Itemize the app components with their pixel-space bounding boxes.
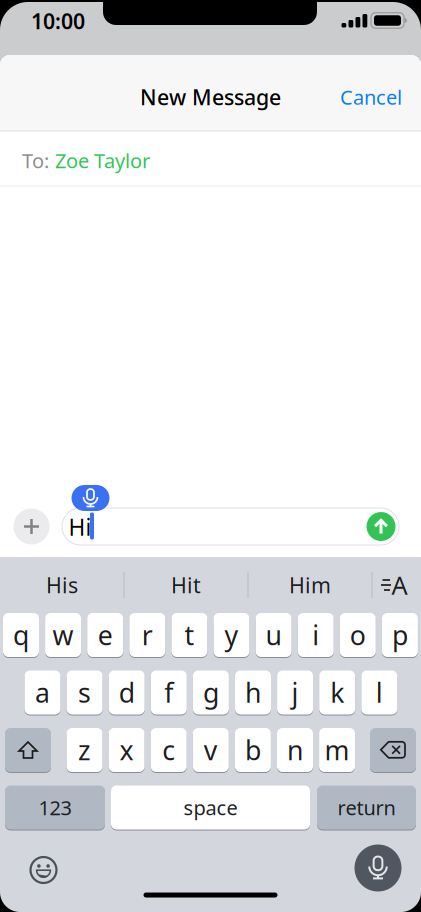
button[interactable]: d <box>109 670 145 714</box>
button[interactable]: a <box>24 670 60 714</box>
staticText: o <box>350 617 366 653</box>
staticText: d <box>119 675 135 710</box>
button[interactable]: w <box>45 613 81 657</box>
button[interactable]: p <box>382 613 418 657</box>
staticText: h <box>245 675 261 710</box>
button[interactable]: s <box>67 670 103 714</box>
staticText: z <box>78 732 91 768</box>
staticText: c <box>162 732 175 768</box>
button[interactable]: y <box>213 613 249 657</box>
staticText: j <box>292 675 299 710</box>
button[interactable]: j <box>277 670 313 714</box>
button[interactable]: Message <box>62 508 399 545</box>
staticText: i <box>312 617 319 653</box>
button[interactable]: k <box>319 670 355 714</box>
staticText: q <box>13 617 29 653</box>
staticText: v <box>204 732 218 768</box>
button[interactable]: r <box>129 613 165 657</box>
staticText: Hit <box>171 571 201 599</box>
staticText: A <box>391 568 407 602</box>
button[interactable]: Delete <box>370 728 416 772</box>
button[interactable]: t <box>171 613 207 657</box>
button[interactable]: h <box>235 670 271 714</box>
staticText: Hi <box>68 512 91 542</box>
staticText: y <box>224 617 238 653</box>
staticText: Cancel <box>340 84 402 110</box>
staticText: New Message <box>140 83 281 111</box>
button[interactable]: v <box>193 728 229 772</box>
staticText: t <box>184 617 194 653</box>
button[interactable]: f <box>151 670 187 714</box>
button[interactable]: Dictate <box>71 485 109 511</box>
button[interactable]: o <box>340 613 376 657</box>
staticText: x <box>120 732 134 768</box>
staticText: return <box>337 794 395 821</box>
button[interactable]: m <box>319 728 355 772</box>
button[interactable]: Him <box>255 563 365 607</box>
button[interactable]: 123 <box>5 785 105 829</box>
staticText: f <box>164 675 173 710</box>
button[interactable]: b <box>235 728 271 772</box>
button[interactable]: c <box>151 728 187 772</box>
button[interactable]: space <box>111 785 310 829</box>
button[interactable]: q <box>3 613 39 657</box>
staticText: 123 <box>38 794 71 821</box>
staticText: m <box>325 732 350 768</box>
button[interactable]: Emoji <box>28 855 58 885</box>
staticText: r <box>142 617 153 653</box>
button[interactable]: Autofill <box>380 573 408 597</box>
button[interactable]: x <box>109 728 145 772</box>
staticText: Zoe Taylor <box>55 147 150 174</box>
button[interactable]: Cancel <box>340 84 402 110</box>
staticText: s <box>78 675 91 710</box>
staticText: e <box>98 617 113 653</box>
button[interactable]: e <box>87 613 123 657</box>
staticText: w <box>53 617 74 653</box>
staticText: space <box>183 794 237 821</box>
button[interactable]: return <box>317 785 416 829</box>
staticText: His <box>46 571 78 599</box>
button[interactable]: n <box>277 728 313 772</box>
staticText: l <box>376 675 383 710</box>
button[interactable]: z <box>66 728 102 772</box>
button[interactable]: g <box>193 670 229 714</box>
button[interactable]: To: <box>22 149 262 171</box>
staticText: To: <box>22 147 49 174</box>
staticText: k <box>330 675 344 710</box>
button[interactable]: Dictation <box>354 844 401 891</box>
staticText: g <box>203 675 219 710</box>
button[interactable]: i <box>298 613 334 657</box>
button[interactable]: Apps <box>13 508 49 544</box>
staticText: p <box>392 617 408 653</box>
button[interactable]: u <box>256 613 292 657</box>
button[interactable]: Shift <box>5 728 51 772</box>
staticText: n <box>287 732 303 768</box>
staticText: b <box>245 732 261 768</box>
button[interactable]: Hit <box>131 563 241 607</box>
staticText: 10:00 <box>31 7 85 35</box>
button[interactable]: l <box>361 670 397 714</box>
staticText: a <box>35 675 50 710</box>
button[interactable]: His <box>7 563 117 607</box>
button[interactable]: Send <box>366 512 395 541</box>
staticText: Him <box>289 571 331 599</box>
staticText: u <box>266 617 282 653</box>
